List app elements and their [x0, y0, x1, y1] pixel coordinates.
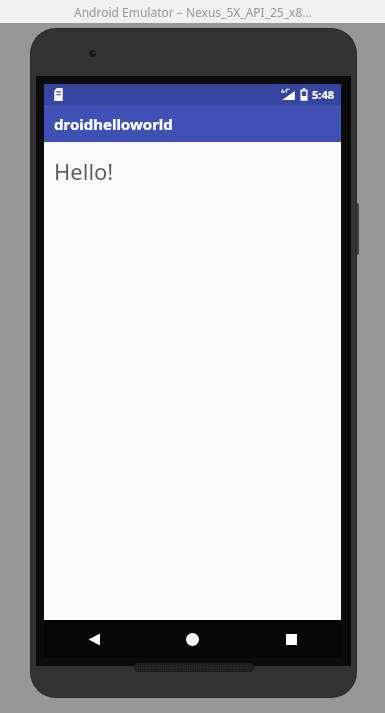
button[interactable]: Home [143, 620, 242, 658]
staticText: Hello! [54, 156, 114, 186]
button[interactable]: droidhelloworld [44, 105, 341, 142]
staticText: Android Emulator – Nexus_5X_API_25_x8… [74, 4, 312, 20]
button[interactable]: Recent apps [242, 620, 341, 658]
button[interactable]: Back [44, 620, 143, 658]
staticText: droidhelloworld [54, 114, 173, 134]
staticText: 5:48 [312, 87, 334, 102]
